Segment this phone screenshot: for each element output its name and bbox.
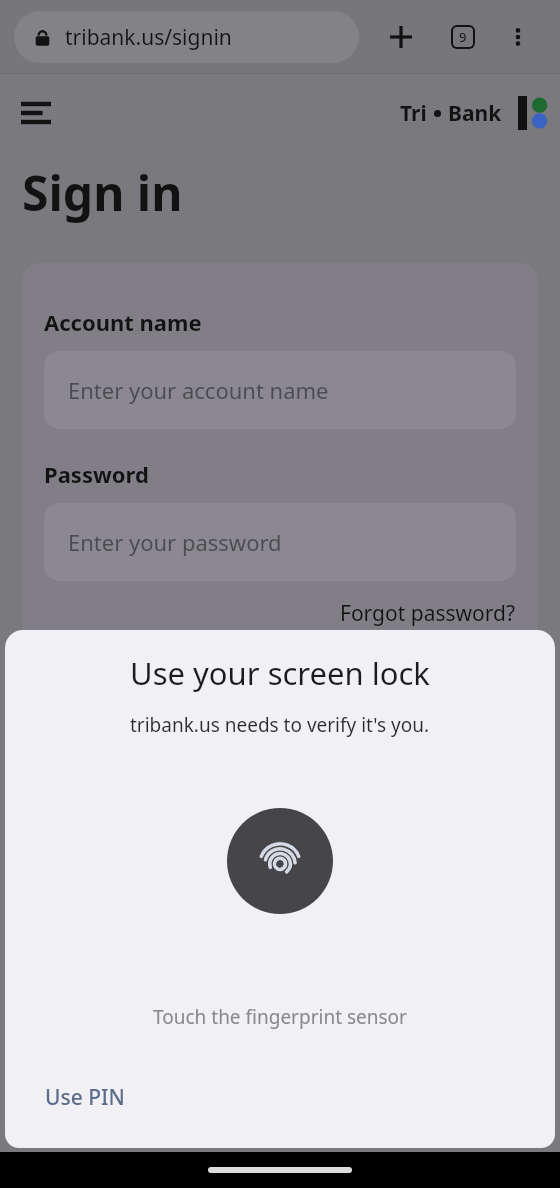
button[interactable]: Menu: [8, 85, 64, 141]
button[interactable]: New tab: [379, 15, 423, 59]
staticText: Password: [44, 459, 149, 489]
staticText: Touch the fingerprint sensor: [153, 1004, 407, 1030]
staticText: Forgot password?: [340, 599, 516, 628]
staticText: Use PIN: [45, 1083, 125, 1112]
staticText: tribank.us needs to verify it's you.: [130, 712, 430, 738]
staticText: tribank.us/signin: [65, 23, 232, 52]
button[interactable]: tribank.us/signin: [14, 11, 359, 63]
staticText: Enter your account name: [68, 375, 329, 405]
staticText: Bank: [448, 99, 502, 128]
button[interactable]: Tabs, 9 open: [441, 15, 485, 59]
button[interactable]: Tri: [400, 96, 548, 130]
button[interactable]: More options: [497, 16, 539, 58]
button[interactable]: Forgot password?: [340, 599, 516, 628]
button[interactable]: Use PIN: [29, 1073, 141, 1122]
staticText: 9: [459, 28, 467, 46]
button[interactable]: Enter your account name: [44, 351, 516, 429]
button[interactable]: Enter your password: [44, 503, 516, 581]
staticText: Account name: [44, 307, 202, 337]
staticText: Sign in: [22, 160, 183, 225]
staticText: Enter your password: [68, 527, 282, 557]
staticText: Use your screen lock: [130, 652, 430, 694]
button[interactable]: Fingerprint sensor: [227, 808, 333, 914]
staticText: Tri: [400, 99, 427, 128]
